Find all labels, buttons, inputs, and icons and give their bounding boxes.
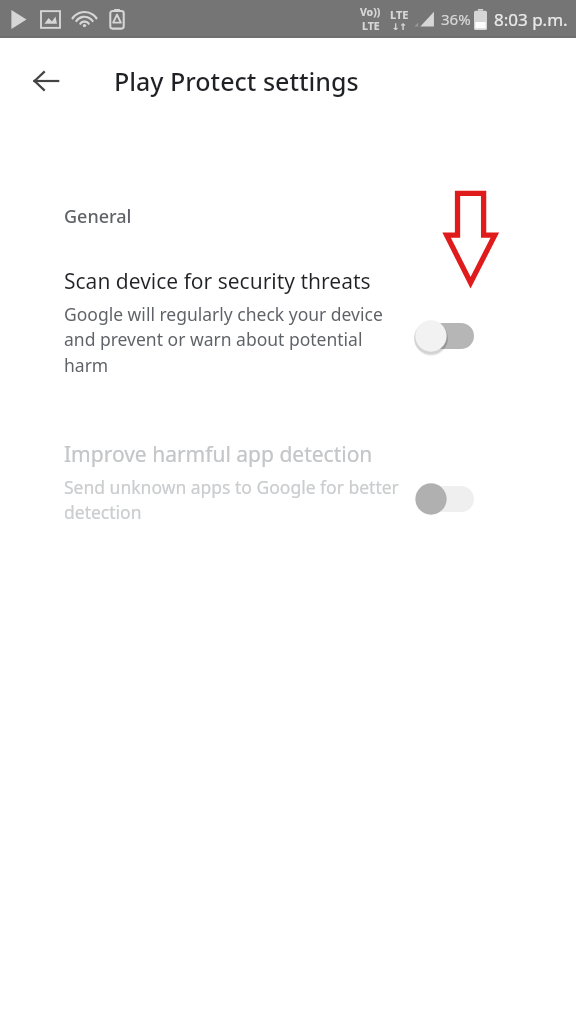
staticText: Play Protect settings [114,64,359,98]
staticText: ↓↑ [392,22,408,32]
button[interactable]: Toggle [414,480,476,518]
staticText: Improve harmful app detection [64,440,373,469]
button[interactable]: Toggle [414,317,476,355]
button[interactable]: Back [22,57,70,105]
staticText: 8:03 p.m. [494,8,568,31]
other: Annotation arrow pointing to switch [444,190,510,286]
staticText: Google will regularly check your device … [64,302,404,378]
staticText: Scan device for security threats [64,267,371,296]
button[interactable]: Scan device for security threats [0,267,576,378]
staticText: Send unknown apps to Google for better d… [64,475,404,525]
staticText: LTE [362,19,380,33]
staticText: Vo)) [360,5,381,19]
staticText: 36% [441,9,471,29]
button[interactable]: Improve harmful app detection [0,440,576,525]
staticText: General [64,204,132,229]
staticText: LTE [390,7,409,22]
